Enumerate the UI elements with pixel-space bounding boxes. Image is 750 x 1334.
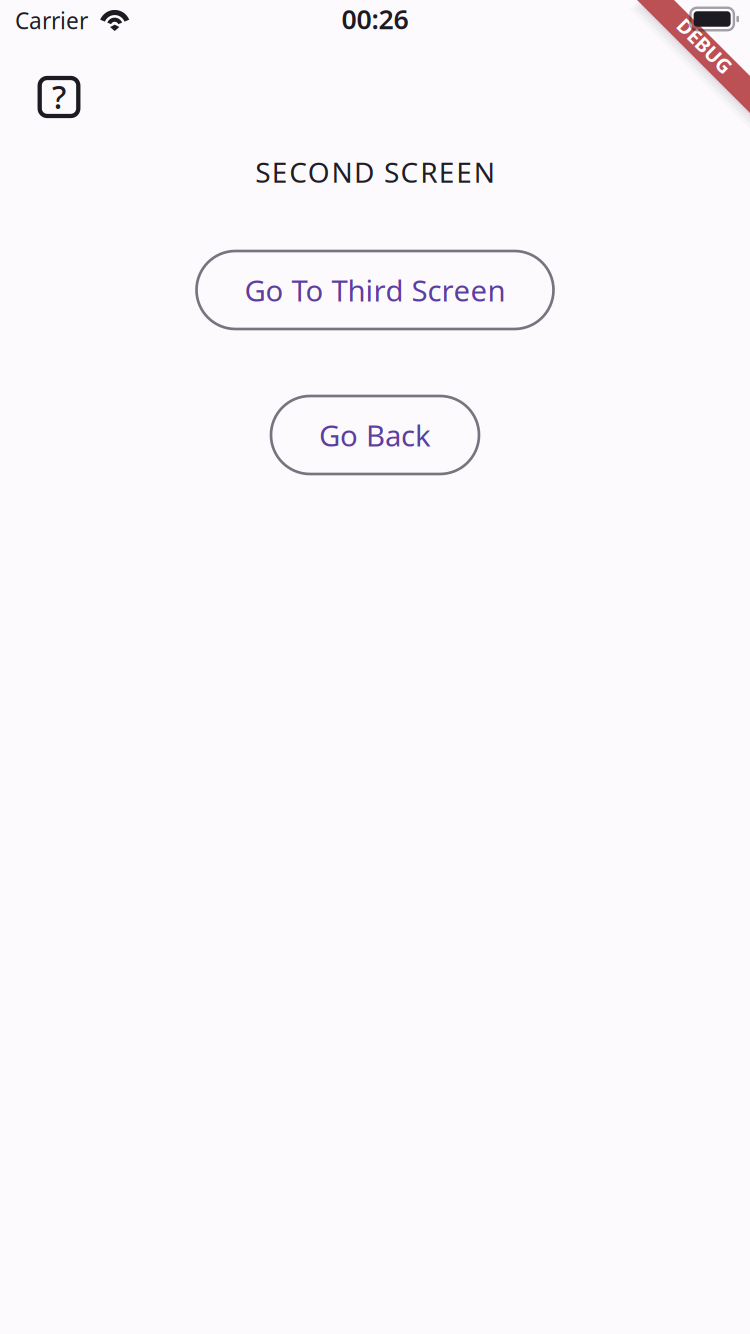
button[interactable]: Help [31,69,87,125]
button[interactable]: Go To Third Screen [196,251,553,329]
staticText: Go Back [319,415,431,454]
staticText: ? [52,75,66,118]
staticText: 00:26 [341,1,408,37]
staticText: Carrier [15,5,88,35]
staticText: SECOND SCREEN [255,153,495,191]
button[interactable]: Go Back [271,396,479,474]
staticText: DEBUG [670,32,738,59]
staticText: Go To Third Screen [244,270,505,309]
